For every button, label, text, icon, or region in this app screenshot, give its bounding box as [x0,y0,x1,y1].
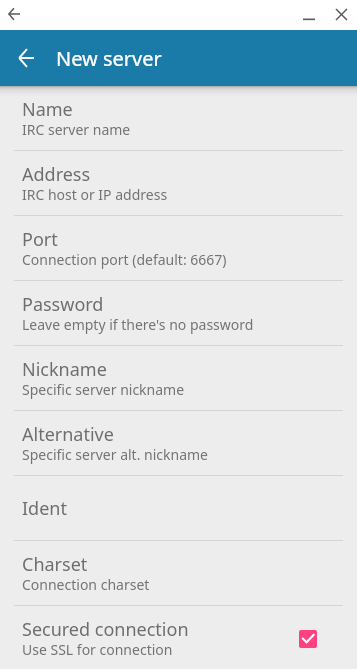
staticText: IRC host or IP address [22,185,168,204]
staticText: Specific server nickname [22,380,185,399]
button[interactable]: Charset [0,541,357,606]
button[interactable]: Address [0,151,357,216]
button[interactable]: Password [0,281,357,346]
button[interactable]: Secured connection, checked [299,630,317,648]
staticText: Use SSL for connection [22,640,173,659]
staticText: New server [56,45,162,72]
staticText: Address [22,162,91,187]
button[interactable]: Alternative [0,411,357,476]
button[interactable]: Navigate up [0,30,56,86]
staticText: Password [22,292,104,317]
staticText: Specific server alt. nickname [22,445,208,464]
button[interactable]: Ident [0,476,357,541]
staticText: Leave empty if there's no password [22,315,254,334]
staticText: Ident [22,496,67,521]
button[interactable]: Port [0,216,357,281]
staticText: Name [22,97,73,122]
staticText: Alternative [22,422,114,447]
button[interactable]: Minimize [295,1,323,29]
staticText: Port [22,227,58,252]
button[interactable]: Name [0,86,357,151]
staticText: Connection port (default: 6667) [22,250,227,269]
button[interactable]: Close [327,1,355,29]
staticText: Secured connection [22,617,189,642]
staticText: Connection charset [22,575,150,594]
button[interactable]: Nickname [0,346,357,411]
staticText: Nickname [22,357,107,382]
button[interactable]: Secured connection [0,606,357,669]
staticText: IRC server name [22,120,131,139]
button[interactable]: Back [0,1,28,29]
staticText: Charset [22,552,88,577]
